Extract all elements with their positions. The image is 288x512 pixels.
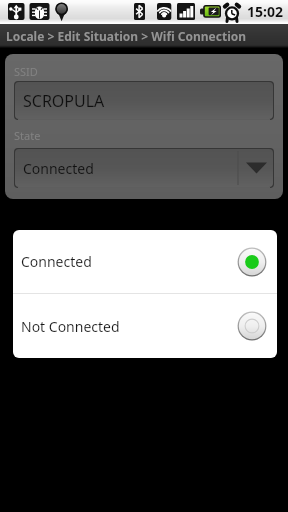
staticText: Connected: [23, 159, 94, 178]
staticText: Connected: [21, 252, 92, 271]
button[interactable]: Not Connected: [13, 294, 277, 358]
staticText: SCROPULA: [23, 90, 105, 112]
staticText: State: [14, 128, 41, 143]
button[interactable]: SCROPULA: [14, 81, 274, 120]
staticText: 15:02: [247, 2, 283, 21]
staticText: Locale > Edit Situation > Wifi Connectio…: [6, 28, 247, 44]
button[interactable]: Connected: [14, 148, 274, 188]
staticText: Not Connected: [21, 317, 120, 336]
staticText: SSID: [14, 64, 38, 79]
other: Open State dropdown: [236, 148, 274, 188]
button[interactable]: Connected: [13, 230, 277, 293]
